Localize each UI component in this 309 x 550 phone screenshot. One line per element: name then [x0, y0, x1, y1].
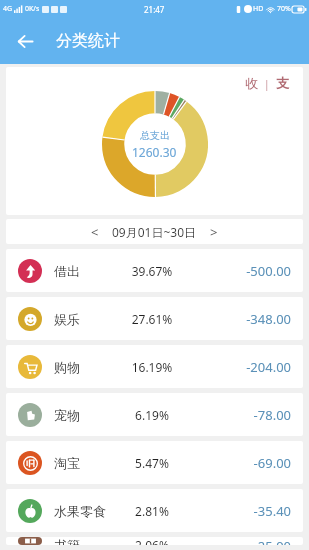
button[interactable]: 购物 — [6, 345, 303, 388]
staticText: 1260.30 — [132, 144, 177, 160]
button[interactable]: 淘宝 — [6, 441, 303, 484]
staticText: 总支出 — [140, 129, 170, 142]
staticText: 收 — [245, 75, 258, 91]
staticText: 4G — [3, 4, 13, 14]
staticText: | — [258, 76, 276, 91]
staticText: 书籍 — [54, 537, 116, 545]
staticText: 购物 — [54, 359, 116, 375]
staticText: 借出 — [54, 263, 116, 279]
staticText: 支 — [276, 75, 289, 91]
staticText: -348.00 — [246, 310, 291, 328]
staticText: -78.00 — [253, 406, 291, 424]
button[interactable]: Next period — [203, 221, 225, 243]
staticText: 70% — [277, 4, 291, 14]
staticText: 分类统计 — [56, 31, 120, 51]
staticText: 水果零食 — [54, 503, 116, 519]
staticText: 娱乐 — [54, 311, 116, 327]
staticText: -35.40 — [253, 502, 291, 520]
button[interactable]: Back — [10, 26, 40, 56]
staticText: -25.90 — [253, 537, 291, 545]
button[interactable]: Previous period — [84, 221, 106, 243]
staticText: 6.19% — [116, 407, 188, 423]
staticText: -500.00 — [246, 262, 291, 280]
button[interactable]: 书籍 — [6, 537, 303, 545]
staticText: 2.06% — [116, 537, 188, 545]
staticText: 39.67% — [116, 263, 188, 279]
button[interactable]: 水果零食 — [6, 489, 303, 532]
button[interactable]: 借出 — [6, 249, 303, 292]
staticText: 09月01日~30日 — [112, 224, 197, 240]
staticText: HD — [253, 4, 264, 14]
button[interactable]: 娱乐 — [6, 297, 303, 340]
staticText: 0K/s — [25, 4, 40, 14]
staticText: -204.00 — [246, 358, 291, 376]
staticText: 27.61% — [116, 311, 188, 327]
staticText: < — [91, 223, 99, 241]
button[interactable]: 收 — [245, 75, 289, 91]
staticText: 淘宝 — [54, 455, 116, 471]
staticText: 宠物 — [54, 407, 116, 423]
staticText: 16.19% — [116, 359, 188, 375]
staticText: 21:47 — [144, 4, 165, 15]
staticText: 5.47% — [116, 455, 188, 471]
staticText: 2.81% — [116, 503, 188, 519]
staticText: > — [210, 223, 218, 241]
staticText: -69.00 — [253, 454, 291, 472]
button[interactable]: 宠物 — [6, 393, 303, 436]
